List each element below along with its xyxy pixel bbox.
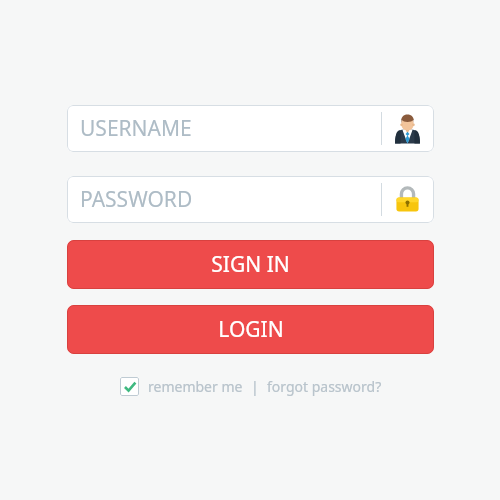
staticText: forgot password? [267,377,382,396]
staticText: PASSWORD [80,185,193,214]
other: Password lock [392,184,423,215]
staticText: remember me [148,377,243,396]
other: User account [392,113,423,144]
staticText: USERNAME [80,114,192,143]
button[interactable]: forgot password? [267,377,382,396]
button[interactable]: LOGIN [67,305,434,354]
button[interactable]: SIGN IN [67,240,434,289]
button[interactable]: USERNAME [67,105,434,152]
staticText: SIGN IN [211,250,290,279]
staticText: | [251,377,259,396]
button[interactable]: remember me [148,377,243,396]
button[interactable]: Remember me checkbox [120,377,139,396]
staticText: LOGIN [218,315,284,344]
button[interactable]: PASSWORD [67,176,434,223]
